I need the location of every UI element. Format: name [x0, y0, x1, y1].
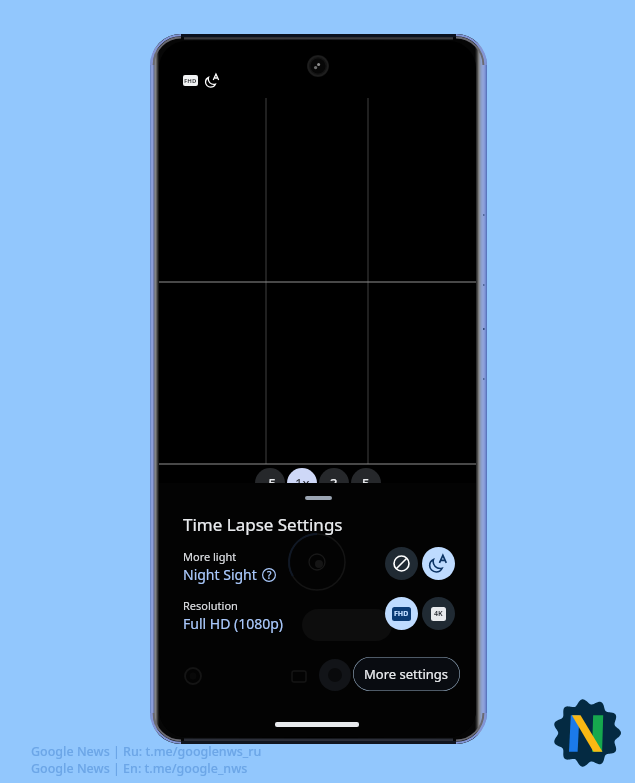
- staticText: Night Sight: [183, 565, 257, 584]
- button[interactable]: .5: [255, 468, 285, 498]
- button[interactable]: 1x: [287, 468, 317, 498]
- staticText: Google News | En: t.me/google_nws: [31, 760, 248, 777]
- button[interactable]: More light: [183, 549, 276, 584]
- staticText: More settings: [364, 665, 449, 683]
- button[interactable]: 5: [351, 468, 381, 498]
- button[interactable]: Video quality FHD: [183, 75, 198, 86]
- staticText: Resolution: [183, 598, 238, 613]
- button[interactable]: No night sight: [385, 547, 418, 580]
- staticText: FHD: [394, 609, 409, 619]
- button[interactable]: Night sight auto: [422, 547, 455, 580]
- staticText: ?: [267, 568, 272, 582]
- staticText: Time Lapse Settings: [183, 513, 343, 536]
- staticText: More light: [183, 549, 237, 564]
- staticText: 4K: [434, 609, 443, 619]
- staticText: 1x: [295, 474, 310, 492]
- button[interactable]: 4K: [422, 597, 455, 630]
- staticText: FHD: [184, 77, 197, 85]
- staticText: 2: [330, 474, 338, 492]
- button[interactable]: Night sight auto: [204, 72, 220, 88]
- button[interactable]: Full HD: [385, 597, 418, 630]
- button[interactable]: Resolution: [183, 598, 284, 633]
- staticText: .5: [265, 474, 276, 492]
- staticText: Google News | Ru: t.me/googlenws_ru: [31, 743, 262, 760]
- staticText: Full HD (1080p): [183, 614, 284, 633]
- staticText: 5: [362, 474, 370, 492]
- button[interactable]: Google News logo: [551, 697, 623, 769]
- button[interactable]: 2: [319, 468, 349, 498]
- button[interactable]: More settings: [353, 657, 460, 691]
